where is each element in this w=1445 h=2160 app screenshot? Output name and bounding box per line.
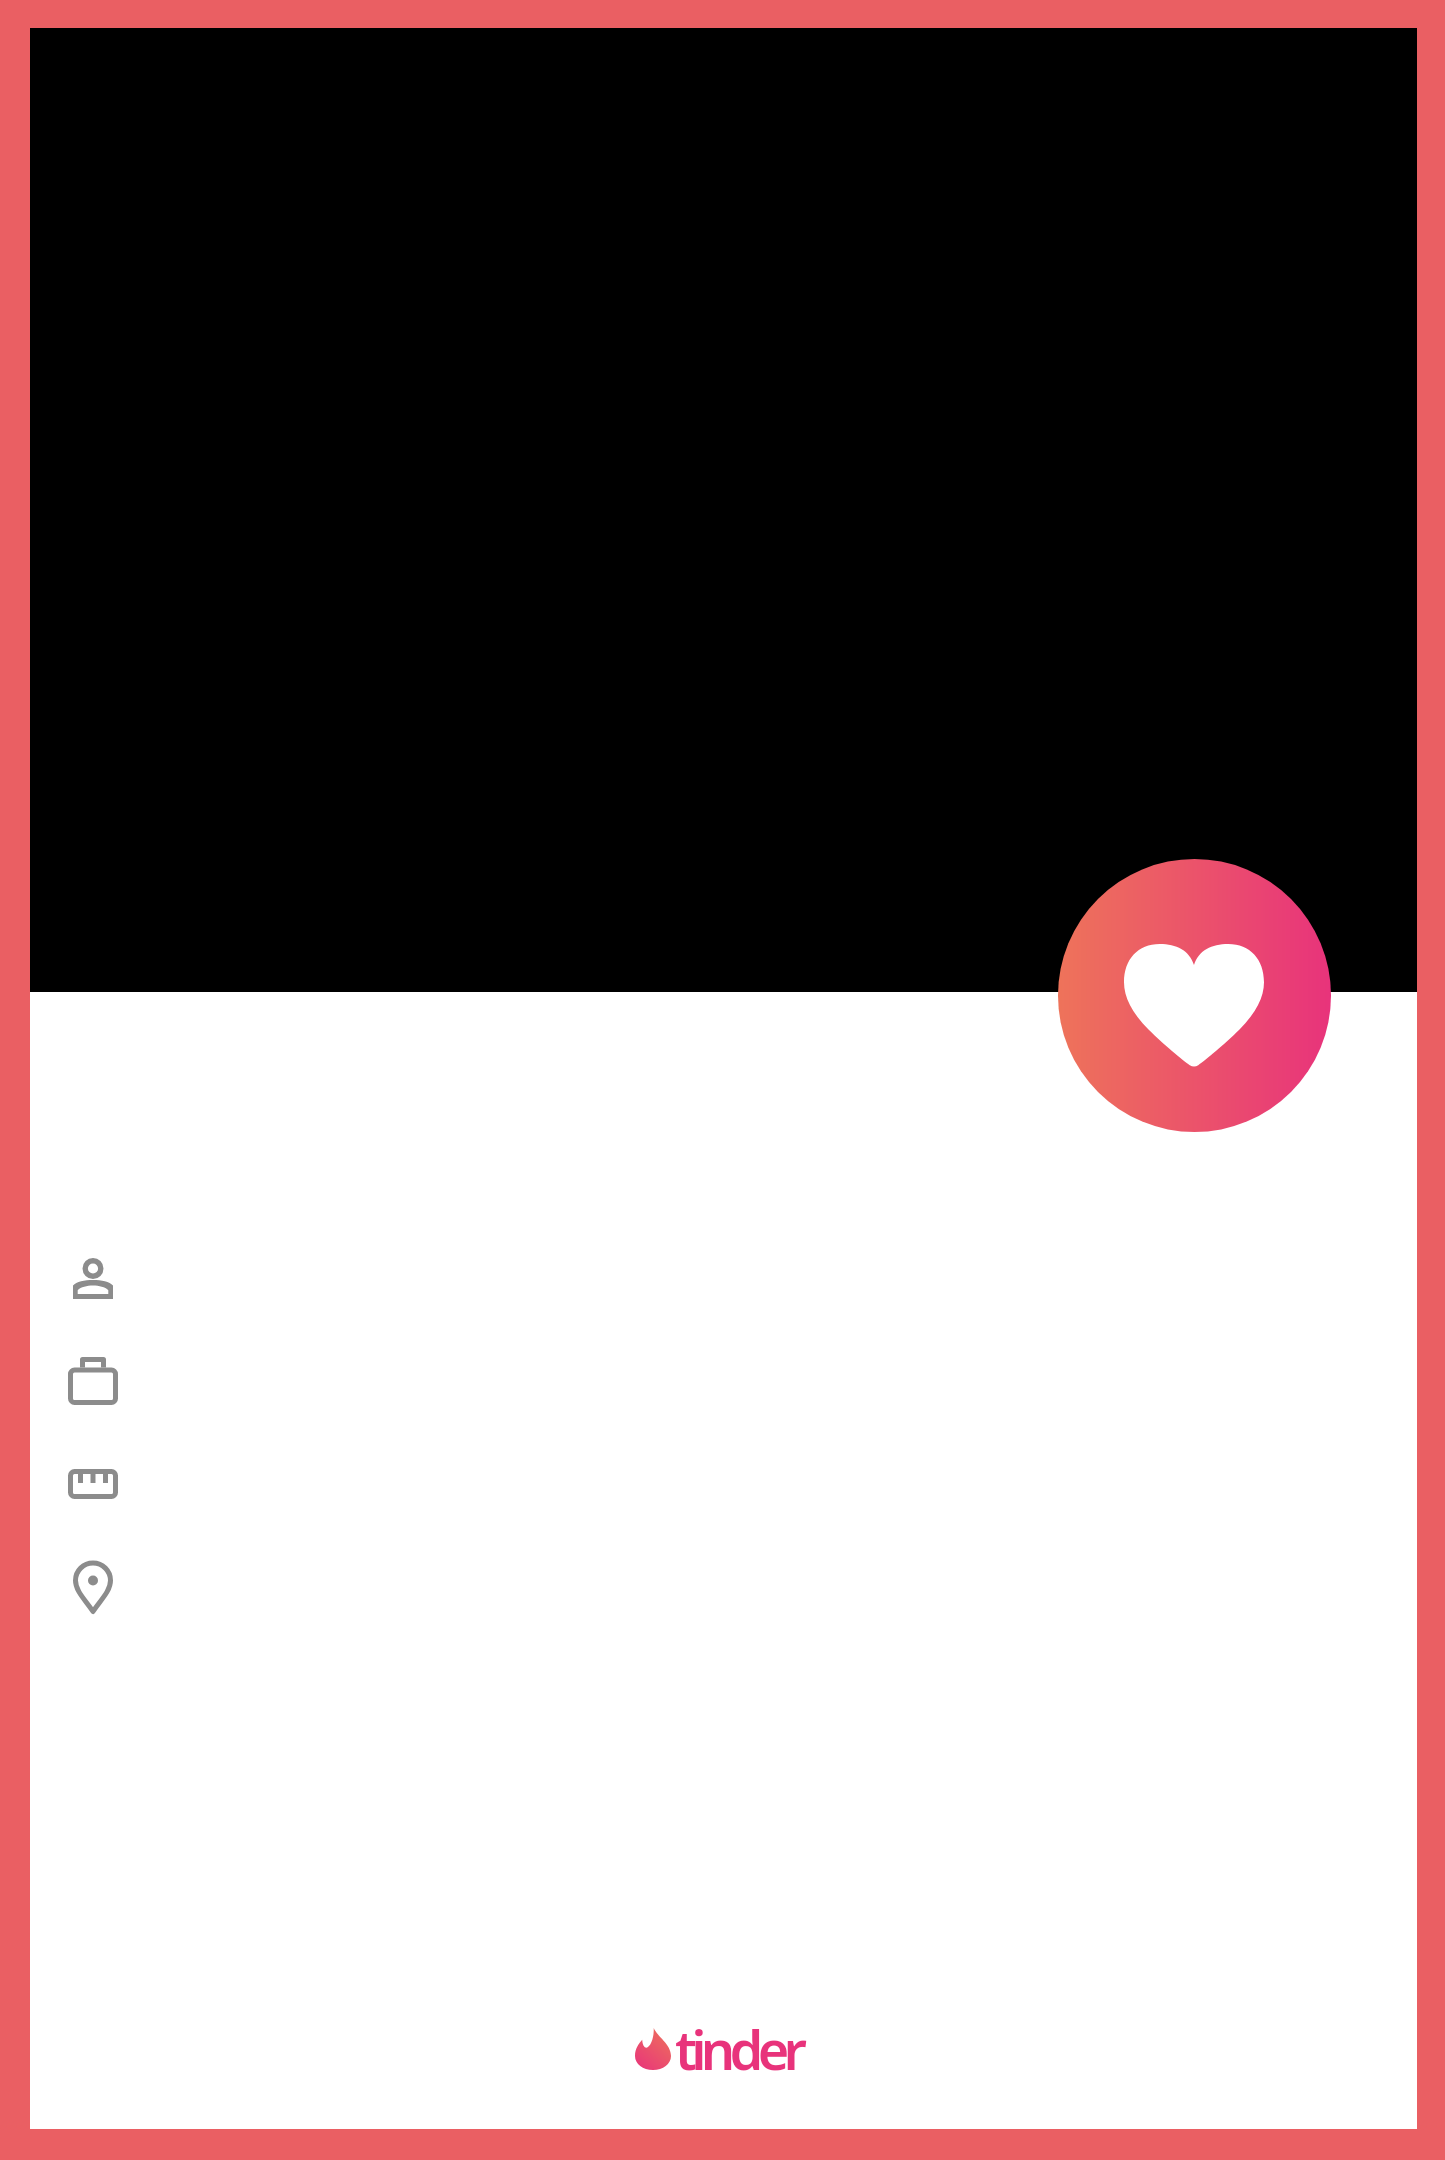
button[interactable]: Job title bbox=[63, 1351, 123, 1411]
button[interactable]: Location bbox=[68, 1554, 118, 1620]
button[interactable]: Height bbox=[63, 1463, 123, 1505]
staticText: tinder bbox=[675, 2012, 802, 2086]
button[interactable]: Like bbox=[1058, 859, 1331, 1132]
button[interactable]: Name and age bbox=[68, 1252, 118, 1306]
